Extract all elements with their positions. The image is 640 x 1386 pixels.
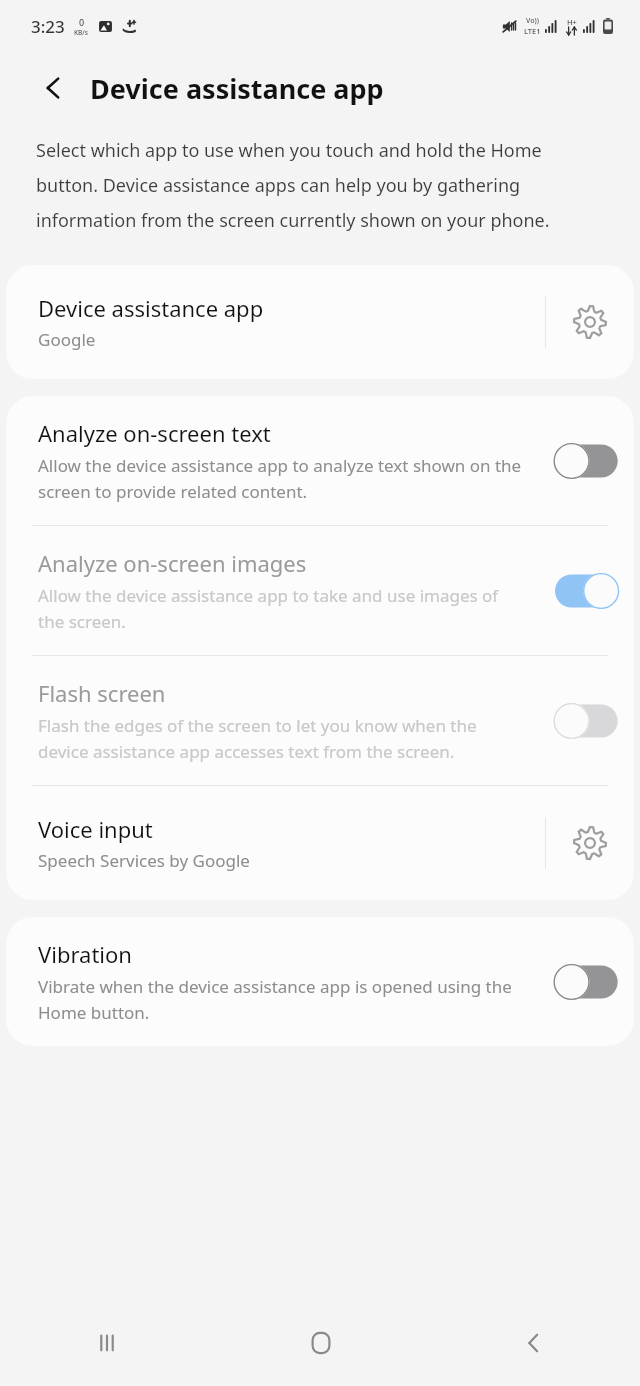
staticText: Flash the edges of the screen to let you… (38, 714, 526, 763)
staticText: Flash screen (38, 678, 166, 708)
staticText: Allow the device assistance app to analy… (38, 454, 526, 503)
button[interactable]: Voice input (6, 786, 634, 900)
staticText: 3:23 (31, 15, 65, 38)
button[interactable]: Analyze on-screen text off (542, 435, 634, 487)
button[interactable]: Analyze on-screen text (6, 396, 634, 525)
staticText: Vibrate when the device assistance app i… (38, 975, 526, 1024)
staticText: Select which app to use when you touch a… (36, 138, 604, 233)
staticText: Google (38, 328, 96, 351)
button[interactable]: Back (32, 66, 76, 110)
staticText: LTE1 (524, 26, 541, 36)
button[interactable]: Settings (546, 786, 634, 900)
button[interactable]: Device assistance app (6, 265, 634, 379)
staticText: Device assistance app (90, 70, 384, 107)
button[interactable]: Settings (546, 265, 634, 379)
staticText: Analyze on-screen images (38, 548, 307, 578)
button[interactable]: Vibration (6, 917, 634, 1046)
staticText: Vo)) (526, 16, 539, 26)
staticText: Speech Services by Google (38, 849, 250, 872)
button[interactable]: Analyze on-screen images on (542, 565, 634, 617)
staticText: 0 (79, 16, 85, 28)
staticText: Device assistance app (38, 293, 264, 323)
staticText: Vibration (38, 939, 132, 969)
button[interactable]: Back (427, 1300, 640, 1386)
staticText: H+ (567, 17, 577, 27)
staticText: Allow the device assistance app to take … (38, 584, 526, 633)
button[interactable]: Flash screen off (542, 695, 634, 747)
button[interactable]: Home (214, 1300, 427, 1386)
button[interactable]: Analyze on-screen images (6, 526, 634, 655)
button[interactable]: Recents (0, 1300, 214, 1386)
staticText: Analyze on-screen text (38, 418, 271, 448)
staticText: Voice input (38, 814, 153, 844)
button[interactable]: Vibration off (542, 956, 634, 1008)
button[interactable]: Flash screen (6, 656, 634, 785)
staticText: KB/s (74, 28, 89, 37)
